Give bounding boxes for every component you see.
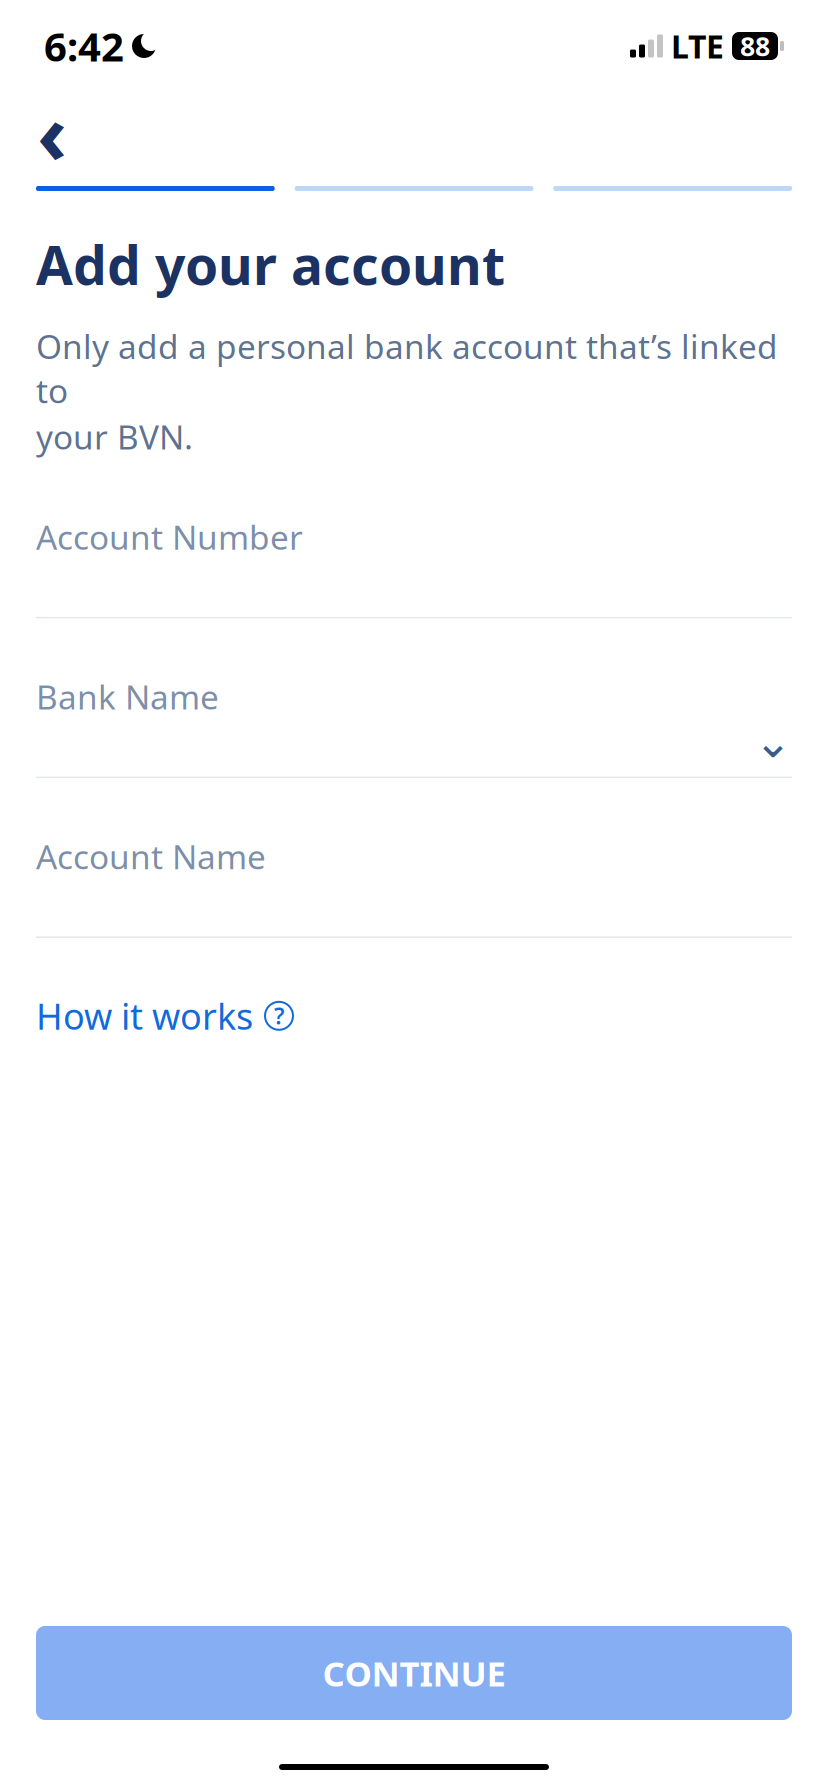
staticText: your BVN. (36, 414, 193, 459)
staticText: Only add a personal bank account that’s … (36, 324, 778, 412)
button[interactable]: CONTINUE (36, 1626, 792, 1720)
staticText: How it works (36, 992, 253, 1040)
button[interactable]: Back (22, 98, 82, 166)
staticText: ? (274, 1001, 284, 1031)
staticText: CONTINUE (322, 1650, 505, 1696)
staticText: Add your account (36, 229, 505, 300)
staticText: ⌄ (754, 716, 792, 767)
staticText: ‹ (37, 77, 67, 187)
staticText: Account Name (36, 834, 266, 878)
button[interactable]: How it works (36, 982, 293, 1050)
staticText: 88 (740, 28, 770, 64)
staticText: LTE (671, 25, 724, 67)
staticText: Account Number (36, 515, 303, 559)
staticText: 6:42 (44, 19, 124, 72)
staticText: Bank Name (36, 674, 219, 719)
